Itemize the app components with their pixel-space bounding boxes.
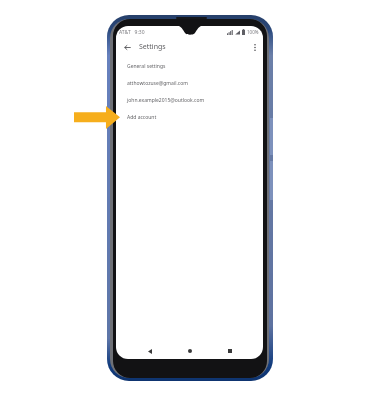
button[interactable]: john.example2015@outlook.com [116, 92, 263, 109]
button[interactable]: Navigate up [120, 40, 134, 54]
button[interactable]: General settings [116, 58, 263, 75]
staticText: Settings [139, 42, 166, 52]
staticText: atthowtozuse@gmail.com [127, 80, 188, 87]
staticText: General settings [127, 63, 166, 70]
button[interactable]: Add account [116, 109, 263, 126]
button[interactable]: atthowtozuse@gmail.com [116, 75, 263, 92]
staticText: john.example2015@outlook.com [127, 97, 205, 104]
button[interactable]: More options [248, 40, 262, 54]
staticText: AT&T 9:30 [119, 29, 145, 36]
button[interactable]: Recent apps [210, 343, 250, 359]
button[interactable]: Home [170, 343, 210, 359]
staticText: Add account [127, 114, 157, 121]
button[interactable]: Back [130, 343, 170, 359]
staticText: 100% [247, 29, 259, 35]
